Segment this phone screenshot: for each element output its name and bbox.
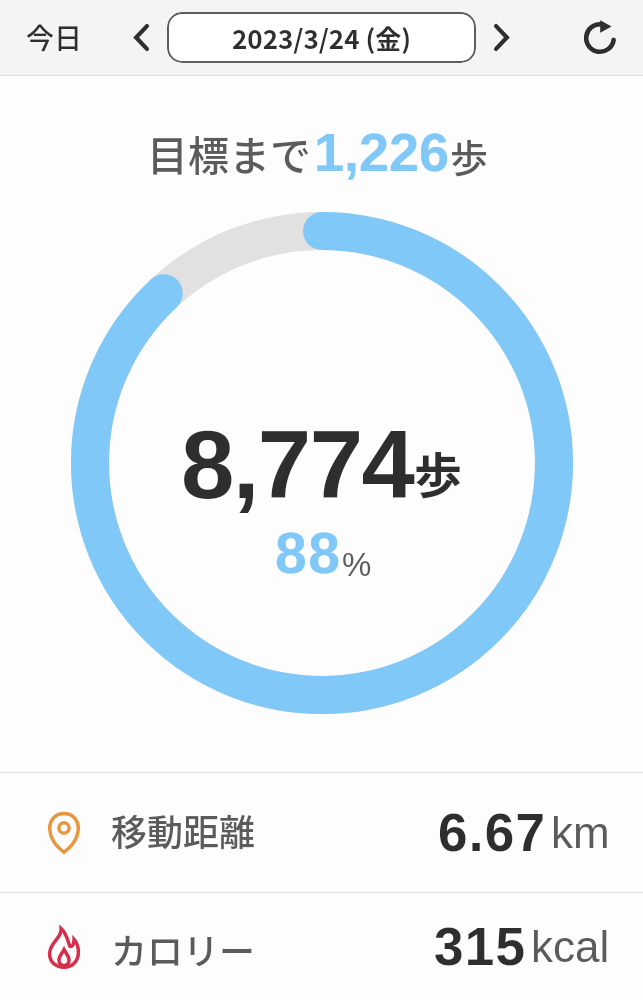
button[interactable]: Refresh — [556, 0, 643, 75]
staticText: カロリー — [111, 923, 256, 975]
staticText: 歩 — [414, 437, 463, 507]
staticText: 目標まで — [147, 123, 311, 182]
button[interactable]: 2023/3/24 (金) — [167, 12, 476, 63]
button[interactable]: Next day — [476, 0, 527, 75]
staticText: 今日 — [26, 17, 83, 58]
staticText: 移動距離 — [111, 804, 256, 856]
staticText: % — [342, 546, 372, 583]
button[interactable]: 移動距離 — [0, 773, 643, 892]
staticText: 2023/3/24 (金) — [232, 19, 412, 57]
staticText: 315 — [434, 917, 527, 976]
staticText: 歩 — [450, 128, 489, 183]
button[interactable]: 今日 — [7, 0, 102, 75]
staticText: 6.67 — [438, 803, 547, 862]
staticText: 8,774 — [181, 411, 414, 518]
staticText: kcal — [531, 922, 610, 971]
staticText: 1,226 — [314, 122, 450, 182]
button[interactable]: Previous day — [109, 0, 173, 75]
button[interactable]: カロリー — [0, 893, 643, 1000]
staticText: km — [551, 808, 610, 857]
staticText: 88 — [275, 521, 342, 585]
